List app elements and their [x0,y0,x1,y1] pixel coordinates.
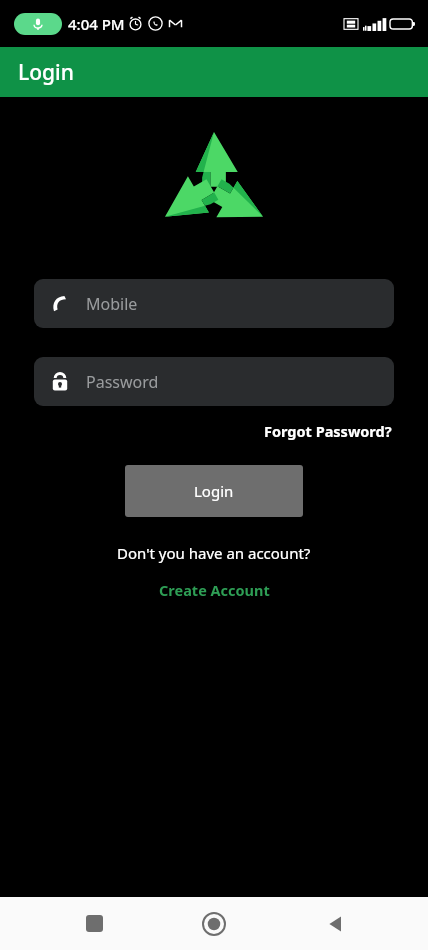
button[interactable]: Recents [67,897,121,950]
button[interactable]: Create Account [153,577,276,603]
button[interactable]: Forgot Password? [262,418,394,444]
staticText: Login [194,481,234,501]
staticText: Password [86,371,159,393]
button[interactable]: Back [308,897,362,950]
staticText: Mobile [86,293,138,315]
staticText: Forgot Password? [264,421,392,441]
button[interactable]: Password [34,357,394,406]
staticText: Login [18,58,74,87]
staticText: 4:04 PM [68,14,125,34]
staticText: Don't you have an account? [117,543,311,563]
button[interactable]: Mobile [34,279,394,328]
button[interactable]: Login [125,465,303,517]
staticText: Create Account [159,580,270,600]
button[interactable]: Home [187,897,241,950]
